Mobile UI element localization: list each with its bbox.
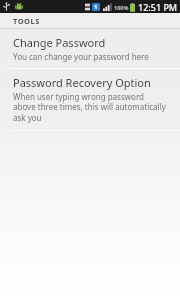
staticText: 1 [94,3,98,11]
staticText: You can change your password here [13,51,149,62]
other: Android system [15,2,23,11]
staticText: Password Recovery Option [13,75,151,90]
staticText: TOOLS [13,16,40,26]
button[interactable]: Password Recovery Option [0,69,180,130]
staticText: Change Password [13,35,106,50]
other: USB connected [3,2,10,11]
staticText: 100% [114,4,129,11]
staticText: 12:51 PM [138,1,178,13]
button[interactable]: Change Password [0,29,180,68]
staticText: When user typing wrong password above th… [13,91,166,124]
